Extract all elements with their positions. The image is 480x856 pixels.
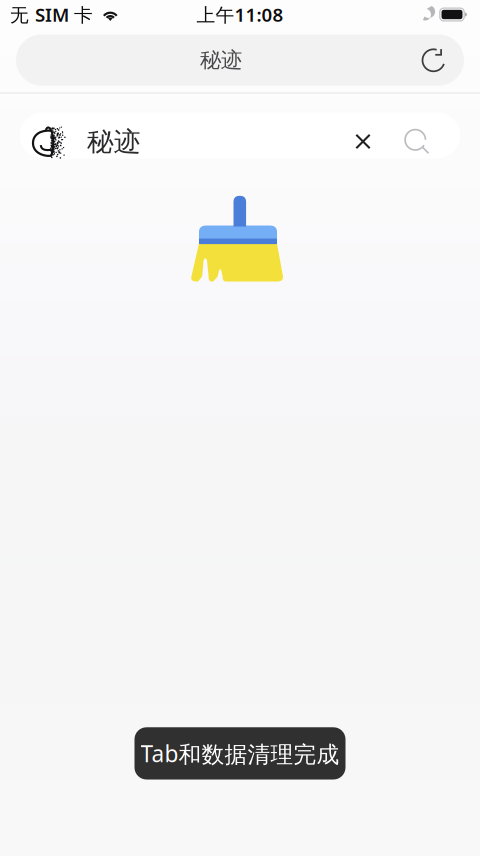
button[interactable]: Refresh <box>411 34 457 85</box>
button[interactable]: Search <box>400 118 434 164</box>
button[interactable]: Clear <box>346 118 380 164</box>
staticText: 无 SIM 卡 <box>10 2 93 27</box>
staticText: 上午11:08 <box>196 2 283 27</box>
staticText: Tab和数据清理完成 <box>140 738 339 768</box>
staticText: 秘迹 <box>87 125 141 158</box>
staticText: 秘迹 <box>200 47 242 73</box>
